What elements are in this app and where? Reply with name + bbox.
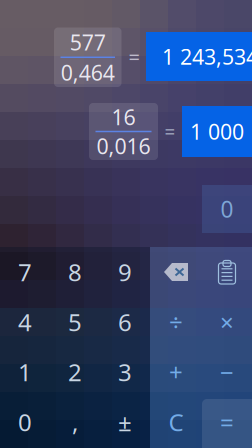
staticText: 2 bbox=[68, 356, 82, 388]
staticText: 9 bbox=[118, 256, 132, 288]
button[interactable]: × bbox=[201, 297, 252, 347]
staticText: 0 bbox=[220, 194, 233, 224]
staticText: + bbox=[169, 356, 183, 388]
button[interactable]: 577 bbox=[54, 27, 121, 87]
button[interactable]: 5 bbox=[50, 297, 100, 347]
button[interactable]: ÷ bbox=[150, 297, 201, 347]
staticText: 3 bbox=[118, 356, 132, 388]
staticText: − bbox=[220, 356, 234, 388]
staticText: C bbox=[168, 406, 183, 438]
staticText: 0 bbox=[18, 406, 32, 438]
button[interactable]: Paste bbox=[201, 247, 252, 297]
staticText: 1 bbox=[18, 356, 32, 388]
staticText: 4 bbox=[18, 306, 32, 338]
button[interactable]: 3 bbox=[100, 347, 150, 397]
button[interactable]: Delete bbox=[150, 247, 201, 297]
staticText: × bbox=[220, 306, 234, 338]
button[interactable]: = bbox=[201, 397, 252, 447]
button[interactable]: 2 bbox=[50, 347, 100, 397]
staticText: 6 bbox=[118, 306, 132, 338]
staticText: ÷ bbox=[169, 306, 183, 338]
staticText: 7 bbox=[18, 256, 32, 288]
staticText: 577 bbox=[70, 28, 106, 56]
staticText: 0,464 bbox=[61, 58, 115, 86]
button[interactable]: − bbox=[201, 347, 252, 397]
button[interactable]: 6 bbox=[100, 297, 150, 347]
staticText: = bbox=[220, 406, 234, 438]
button[interactable]: ± bbox=[100, 397, 150, 447]
staticText: = bbox=[128, 44, 139, 70]
button[interactable]: 1 bbox=[0, 347, 50, 397]
staticText: 0,016 bbox=[96, 132, 150, 160]
button[interactable]: 0 bbox=[0, 397, 50, 447]
button[interactable]: + bbox=[150, 347, 201, 397]
button[interactable]: 7 bbox=[0, 247, 50, 297]
staticText: 16 bbox=[111, 103, 135, 131]
button[interactable]: 8 bbox=[50, 247, 100, 297]
button[interactable]: 16 bbox=[89, 103, 158, 160]
button[interactable]: 9 bbox=[100, 247, 150, 297]
staticText: = bbox=[164, 119, 175, 143]
button[interactable]: 4 bbox=[0, 297, 50, 347]
button[interactable]: , bbox=[50, 397, 100, 447]
staticText: ± bbox=[118, 406, 132, 438]
staticText: 1 000 bbox=[190, 117, 244, 146]
staticText: , bbox=[72, 406, 78, 438]
staticText: 5 bbox=[68, 306, 82, 338]
staticText: 1 243,534 bbox=[162, 42, 252, 71]
staticText: 8 bbox=[68, 256, 82, 288]
button[interactable]: C bbox=[150, 397, 201, 447]
